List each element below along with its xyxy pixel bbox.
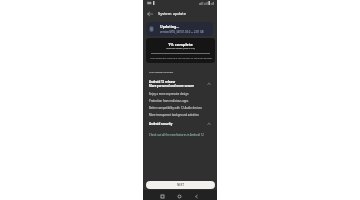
staticText: System update <box>158 11 186 16</box>
staticText: Enjoy a more expressive design <box>149 92 189 96</box>
button[interactable]: Home <box>175 192 184 200</box>
staticText: More personal and more secure <box>149 84 194 88</box>
staticText: Updating… <box>160 24 180 29</box>
staticText: version MTG_S4Y.01.03.0 — 2.81 GB <box>160 30 204 34</box>
button[interactable]: NEXT <box>146 181 215 189</box>
staticText: The update will continue if you go back … <box>150 57 212 60</box>
staticText: NEXT <box>177 183 185 187</box>
staticText: 1% complete <box>168 42 193 47</box>
button[interactable]: Back <box>144 8 155 19</box>
button[interactable]: Android security <box>149 122 211 126</box>
button[interactable]: Recent apps <box>158 192 167 200</box>
button[interactable]: Android 12 release <box>149 80 211 88</box>
staticText: Better compatibility with 12 Audio devic… <box>149 106 202 110</box>
button[interactable]: Back <box>192 192 201 200</box>
staticText: This update includes <box>149 70 174 73</box>
staticText: Android 12 release <box>149 80 176 84</box>
staticText: Protection from malicious apps <box>149 99 189 103</box>
button[interactable]: Updating… <box>146 22 213 36</box>
button[interactable]: Check out all the new features in Androi… <box>149 133 204 137</box>
staticText: Applying update (Step 2 of 3) <box>166 47 195 50</box>
staticText: More transparent background activities <box>149 113 199 117</box>
staticText: Android security <box>149 122 207 126</box>
